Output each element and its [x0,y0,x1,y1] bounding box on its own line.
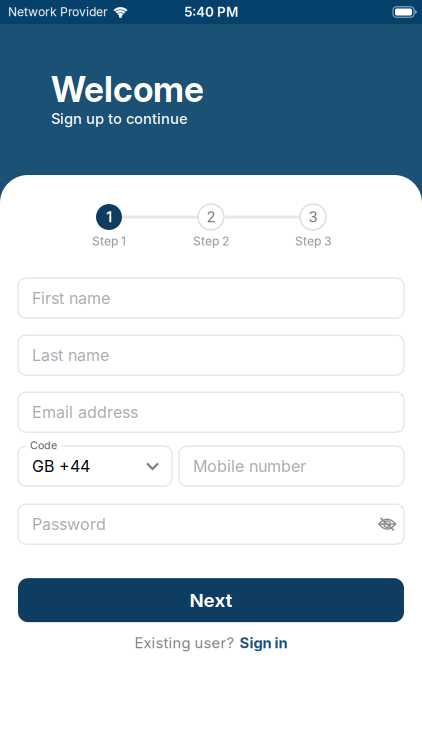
staticText: Code [30,439,57,452]
staticText: Next [189,589,232,611]
staticText: GB +44 [32,457,90,476]
staticText: Last name [32,346,109,365]
staticText: Step 3 [295,234,331,248]
staticText: Sign in [239,634,287,651]
secureTextField[interactable]: Password [18,504,404,544]
textField[interactable]: First name [18,278,404,318]
button[interactable]: Show password [378,517,396,531]
staticText: Step 1 [92,234,126,248]
staticText: Existing user? [134,634,233,651]
staticText: Sign up to continue [51,110,188,127]
staticText: 2 [206,208,215,226]
staticText: First name [32,289,110,308]
staticText: Step 2 [193,234,229,248]
staticText: Password [32,515,106,534]
button[interactable]: Next [18,578,404,622]
staticText: Mobile number [193,457,306,476]
textField[interactable]: Mobile number [179,446,404,486]
staticText: Network Provider [8,5,108,19]
staticText: 5:40 PM [184,4,238,20]
staticText: Email address [32,403,138,422]
staticText: Welcome [51,69,204,110]
staticText: 1 [106,208,112,226]
textField[interactable]: Last name [18,335,404,375]
button[interactable]: GB +44 [18,446,172,486]
button[interactable]: Sign in [239,634,287,651]
textField[interactable]: Email address [18,392,404,432]
staticText: 3 [308,208,317,226]
